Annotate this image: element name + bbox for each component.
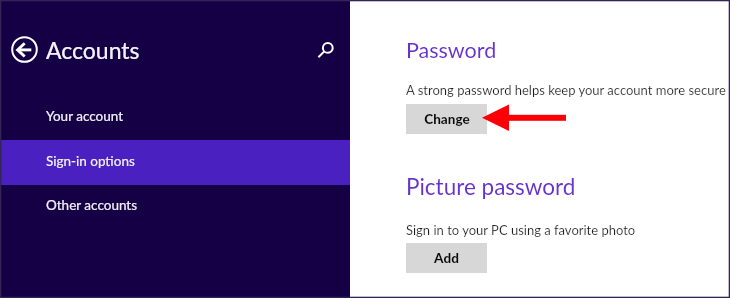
button[interactable]: Back	[11, 36, 38, 63]
staticText: Add	[434, 250, 459, 266]
staticText: Change	[424, 111, 470, 127]
button[interactable]: Your account	[0, 95, 350, 140]
staticText: Sign in to your PC using a favorite phot…	[406, 222, 636, 238]
button[interactable]: Change	[406, 104, 487, 134]
staticText: A strong password helps keep your accoun…	[406, 82, 726, 98]
staticText: Picture password	[406, 173, 576, 200]
staticText: Your account	[46, 108, 124, 124]
button[interactable]: Add	[406, 243, 487, 273]
button[interactable]: Other accounts	[0, 184, 350, 229]
button[interactable]: Search	[314, 38, 338, 62]
staticText: Other accounts	[46, 197, 138, 213]
staticText: Password	[406, 37, 497, 63]
staticText: Sign-in options	[46, 153, 135, 169]
staticText: Accounts	[46, 36, 140, 64]
button[interactable]: Sign-in options	[0, 140, 350, 185]
